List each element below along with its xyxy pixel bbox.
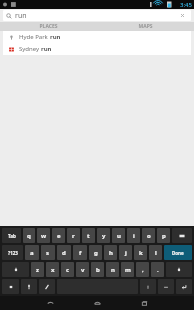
button[interactable]: mic <box>21 279 37 294</box>
staticText: f <box>79 249 82 257</box>
button[interactable]: e <box>52 228 65 243</box>
button[interactable]: ?123 <box>2 245 23 260</box>
button[interactable]: del <box>172 228 192 243</box>
staticText: k <box>139 249 143 257</box>
staticText: i <box>133 232 135 240</box>
button[interactable]: u <box>112 228 125 243</box>
staticText: m <box>125 266 131 274</box>
staticText: ?123 <box>8 250 18 256</box>
staticText: run <box>15 11 27 21</box>
button[interactable]: q <box>23 228 35 243</box>
button[interactable]: g <box>89 245 102 260</box>
button[interactable]: v <box>76 262 89 277</box>
button[interactable]: Tab <box>2 228 21 243</box>
staticText: Done <box>172 250 184 256</box>
staticText: Tab <box>8 233 16 239</box>
button[interactable]: , <box>136 262 149 277</box>
staticText: a <box>30 249 34 257</box>
button[interactable]: shift <box>2 262 29 277</box>
button[interactable]: Home <box>74 296 121 310</box>
staticText: 3:45 <box>180 1 192 9</box>
staticText: h <box>109 249 113 257</box>
button[interactable]: MAPS <box>97 22 194 31</box>
button[interactable]: . <box>151 262 164 277</box>
button[interactable]: o <box>142 228 155 243</box>
staticText: run <box>41 45 52 53</box>
staticText: c <box>66 266 70 274</box>
staticText: , <box>142 266 144 274</box>
staticText: . <box>157 266 159 274</box>
staticText: run <box>50 33 61 41</box>
button[interactable]: shift <box>166 262 192 277</box>
staticText: g <box>94 249 98 257</box>
button[interactable]: d <box>57 245 71 260</box>
button[interactable]: m <box>121 262 134 277</box>
button[interactable]: dash <box>158 279 174 294</box>
button[interactable]: a <box>25 245 39 260</box>
staticText: MAPS <box>138 23 153 30</box>
button[interactable]: k <box>134 245 147 260</box>
button[interactable]: p <box>157 228 170 243</box>
staticText: PLACES <box>39 23 58 30</box>
button[interactable]: r <box>67 228 80 243</box>
button[interactable]: f <box>73 245 87 260</box>
button[interactable]: Done <box>164 245 192 260</box>
staticText: p <box>162 232 166 240</box>
staticText: y <box>102 232 106 240</box>
button[interactable]: t <box>82 228 95 243</box>
button[interactable]: PLACES <box>0 22 97 31</box>
staticText: Hyde Park <box>19 33 50 41</box>
staticText: w <box>41 232 47 240</box>
button[interactable]: i <box>127 228 140 243</box>
staticText: s <box>46 249 50 257</box>
staticText: d <box>62 249 66 257</box>
button[interactable]: Hyde Park <box>3 31 191 43</box>
staticText: e <box>57 232 61 240</box>
button[interactable]: b <box>91 262 104 277</box>
staticText: v <box>81 266 85 274</box>
button[interactable]: y <box>97 228 110 243</box>
button[interactable]: h <box>104 245 117 260</box>
button[interactable]: Clear search <box>177 10 188 21</box>
button[interactable]: j <box>119 245 132 260</box>
button[interactable]: x <box>46 262 59 277</box>
staticText: j <box>125 249 127 257</box>
button[interactable]: Sydney <box>3 43 191 55</box>
staticText: n <box>111 266 115 274</box>
button[interactable]: s <box>41 245 55 260</box>
button[interactable]: l <box>149 245 162 260</box>
staticText: l <box>155 249 157 257</box>
button[interactable]: Recents <box>121 296 168 310</box>
button[interactable]: grid <box>2 279 19 294</box>
button[interactable]: Back <box>27 296 74 310</box>
staticText: q <box>27 232 31 240</box>
button[interactable]: run <box>3 10 191 21</box>
staticText: o <box>147 232 151 240</box>
button[interactable]: z <box>31 262 44 277</box>
staticText: Sydney <box>19 45 41 53</box>
button[interactable]: c <box>61 262 74 277</box>
button[interactable]: w <box>37 228 50 243</box>
staticText: x <box>51 266 55 274</box>
staticText: z <box>36 266 39 274</box>
staticText: r <box>72 232 75 240</box>
button[interactable]: dot <box>140 279 156 294</box>
button[interactable]: n <box>106 262 119 277</box>
button[interactable]: enter <box>176 279 192 294</box>
staticText: u <box>117 232 121 240</box>
staticText: b <box>96 266 100 274</box>
button[interactable]: pen <box>39 279 55 294</box>
staticText: t <box>87 232 90 240</box>
